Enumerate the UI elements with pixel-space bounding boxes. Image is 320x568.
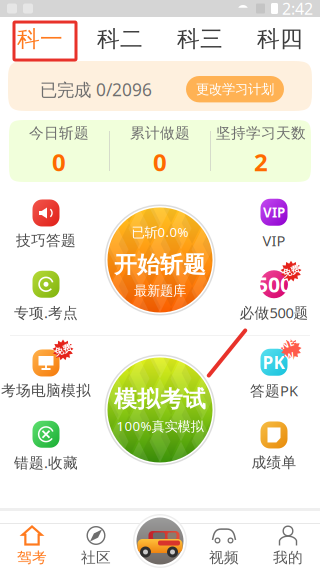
button[interactable]: 更改学习计划: [186, 76, 284, 102]
staticText: 500: [256, 270, 292, 298]
staticText: VIP: [263, 203, 285, 221]
staticText: 更改学习计划: [196, 81, 274, 97]
button[interactable]: 视频: [192, 524, 256, 568]
staticText: 最新题库: [134, 283, 186, 299]
staticText: VIP: [262, 231, 285, 250]
staticText: 100%真实模拟: [116, 417, 203, 435]
staticText: 社区: [81, 548, 111, 566]
button[interactable]: VIP: [228, 200, 320, 248]
staticText: 已完成 0/2096: [40, 78, 152, 101]
staticText: 0: [52, 146, 66, 178]
button[interactable]: 技巧答题: [0, 200, 92, 248]
button[interactable]: PK: [228, 350, 320, 398]
staticText: 2:42: [282, 0, 313, 19]
staticText: 2: [254, 146, 268, 178]
button[interactable]: 科三: [160, 17, 240, 61]
staticText: 专项.考点: [14, 303, 78, 322]
staticText: 科四: [257, 25, 303, 53]
button[interactable]: 模拟考试: [104, 354, 215, 465]
staticText: 答题PK: [250, 381, 298, 400]
staticText: 模拟考试: [114, 385, 206, 413]
staticText: 0: [153, 146, 167, 178]
button[interactable]: 科二: [80, 17, 160, 61]
staticText: 驾考: [17, 548, 47, 566]
staticText: 科二: [97, 25, 143, 53]
button[interactable]: 500: [228, 272, 320, 320]
button[interactable]: 驾考: [0, 524, 64, 568]
staticText: PK: [262, 351, 285, 374]
button[interactable]: 成绩单: [228, 422, 320, 470]
button[interactable]: 免费: [0, 350, 92, 398]
staticText: 考场电脑模拟: [1, 381, 91, 399]
staticText: 视频: [209, 548, 239, 566]
staticText: 科一: [17, 25, 63, 53]
button[interactable]: 专项.考点: [0, 272, 92, 320]
button[interactable]: 我的: [256, 524, 320, 568]
staticText: 必做500题: [239, 303, 308, 322]
button[interactable]: 练车: [133, 514, 187, 568]
staticText: 坚持学习天数: [216, 124, 306, 142]
staticText: 成绩单: [251, 453, 296, 471]
button[interactable]: 社区: [64, 524, 128, 568]
staticText: NEW: [283, 337, 299, 362]
staticText: 技巧答题: [16, 231, 76, 249]
staticText: 我的: [273, 548, 303, 566]
button[interactable]: 已斩0.0%: [104, 204, 215, 315]
staticText: 开始斩题: [114, 251, 206, 278]
staticText: 免费: [54, 344, 72, 356]
staticText: 已斩0.0%: [131, 223, 188, 241]
button[interactable]: 科一: [0, 17, 80, 61]
button[interactable]: 错题.收藏: [0, 422, 92, 470]
staticText: 累计做题: [130, 124, 190, 142]
staticText: 科三: [177, 25, 223, 53]
button[interactable]: 科四: [240, 17, 320, 61]
button[interactable]: [128, 524, 192, 568]
staticText: 错题.收藏: [14, 453, 78, 472]
staticText: 免费: [282, 265, 300, 277]
staticText: 今日斩题: [29, 124, 89, 142]
